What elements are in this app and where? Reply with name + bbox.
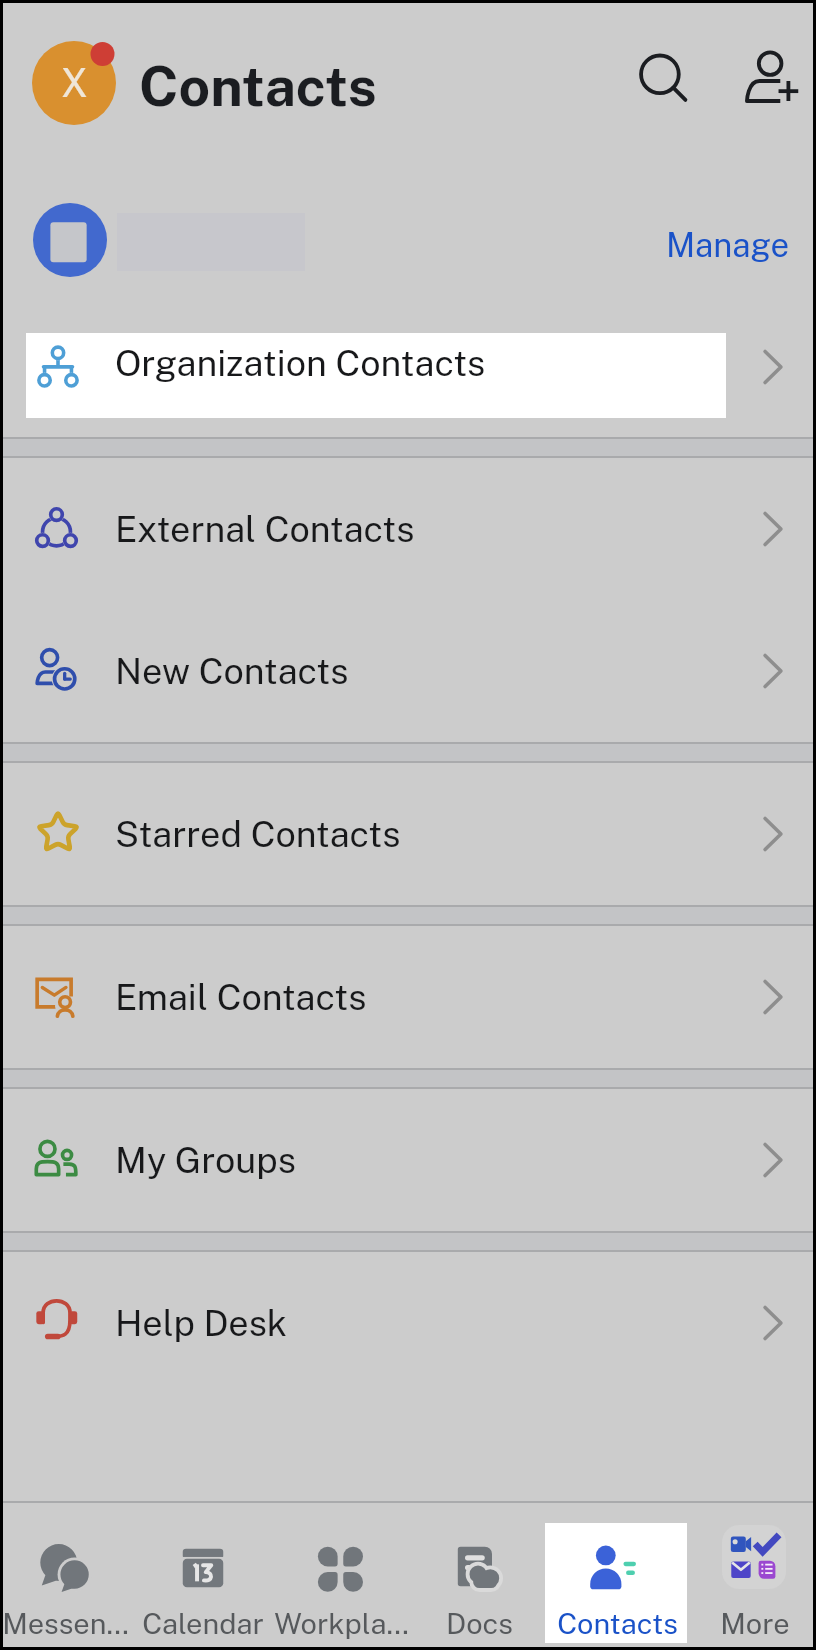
button[interactable]: More	[688, 1503, 816, 1647]
button[interactable]: Workpla…	[274, 1503, 408, 1647]
button[interactable]: Manage	[660, 218, 796, 273]
button[interactable]: Account	[29, 38, 125, 134]
button[interactable]: External Contacts	[3, 458, 813, 600]
staticText: Calendar	[142, 1606, 264, 1640]
staticText: Email Contacts	[115, 976, 367, 1018]
staticText: Contacts	[557, 1606, 678, 1640]
staticText: Help Desk	[115, 1302, 288, 1344]
button[interactable]: Add contact	[733, 43, 809, 119]
button[interactable]: Starred Contacts	[3, 763, 813, 905]
button[interactable]: Organization Contacts	[3, 303, 813, 437]
button[interactable]: Calendar	[136, 1503, 270, 1647]
button[interactable]: New Contacts	[3, 600, 813, 742]
button[interactable]: Email Contacts	[3, 926, 813, 1068]
button[interactable]: Docs	[412, 1503, 546, 1647]
staticText: Organization Contacts	[115, 342, 486, 384]
staticText: X	[61, 60, 88, 106]
button[interactable]: Help Desk	[3, 1252, 813, 1394]
staticText: New Contacts	[115, 650, 349, 692]
staticText: Contacts	[139, 54, 377, 119]
staticText: External Contacts	[115, 508, 415, 550]
button[interactable]: Contacts	[550, 1503, 684, 1647]
staticText: More	[720, 1606, 790, 1640]
staticText: Docs	[446, 1606, 513, 1640]
staticText: My Groups	[115, 1139, 296, 1181]
staticText: Workpla…	[274, 1606, 408, 1640]
staticText: Messen…	[2, 1606, 129, 1640]
staticText: Starred Contacts	[115, 813, 401, 855]
button[interactable]: Search	[628, 43, 704, 119]
button[interactable]: My Groups	[3, 1089, 813, 1231]
staticText: Manage	[666, 226, 790, 265]
button[interactable]: Messen…	[0, 1503, 132, 1647]
